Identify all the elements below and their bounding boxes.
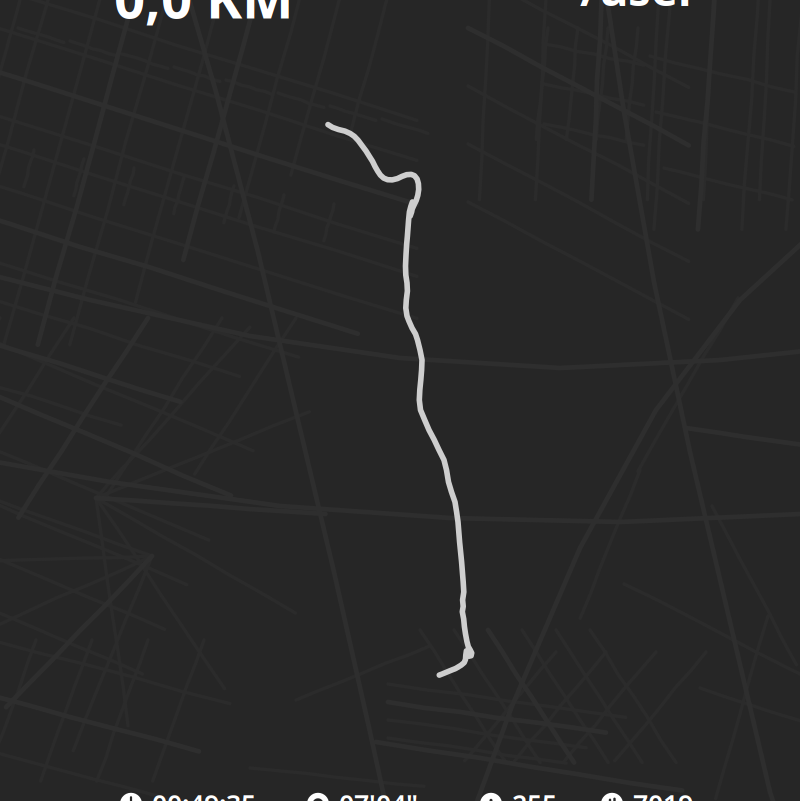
staticText: /user: [580, 0, 698, 19]
button[interactable]: 255: [480, 786, 557, 801]
button[interactable]: 7019: [601, 786, 693, 801]
staticText: 0,0 KM: [114, 0, 294, 34]
button[interactable]: 07'04": [307, 786, 418, 801]
button[interactable]: 00:49:35: [120, 786, 256, 801]
staticText: 7019: [633, 786, 693, 801]
staticText: 07'04": [339, 786, 418, 801]
staticText: 255: [512, 786, 557, 801]
staticText: 00:49:35: [152, 786, 256, 801]
